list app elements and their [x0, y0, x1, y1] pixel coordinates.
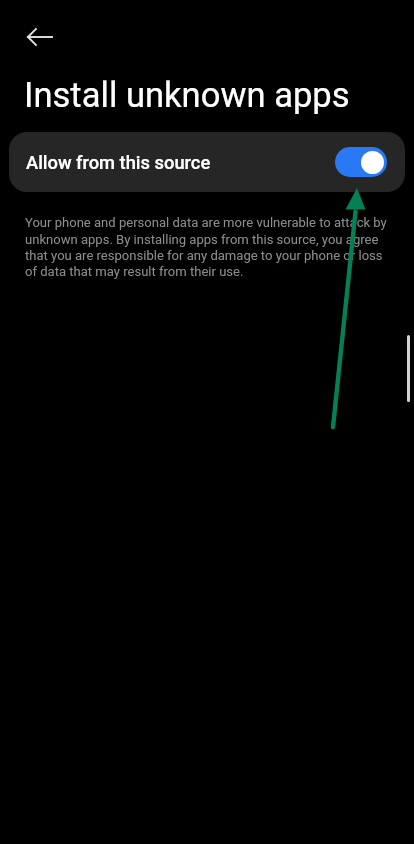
staticText: Your phone and personal data are more vu… — [25, 215, 395, 279]
button[interactable]: Allow from this source toggle — [335, 147, 387, 177]
staticText: Install unknown apps — [24, 75, 350, 116]
button[interactable]: Allow from this source — [9, 132, 405, 192]
button[interactable]: Back — [16, 13, 64, 61]
staticText: Allow from this source — [26, 152, 211, 173]
